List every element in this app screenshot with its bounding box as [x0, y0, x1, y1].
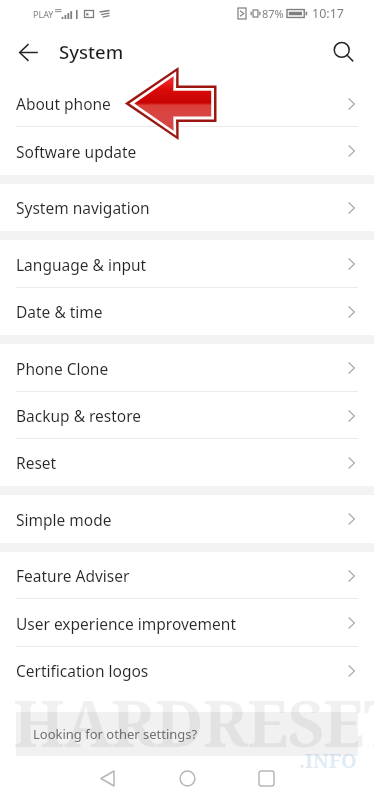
staticText: Phone Clone: [16, 358, 109, 379]
staticText: Feature Adviser: [16, 565, 130, 586]
button[interactable]: Certification logos: [0, 647, 374, 694]
staticText: HARDRESET: [13, 679, 374, 765]
staticText: 10:17: [312, 5, 344, 22]
button[interactable]: Back: [85, 756, 129, 800]
staticText: Backup & restore: [16, 405, 142, 426]
button[interactable]: Recents: [244, 756, 288, 800]
button[interactable]: System navigation: [0, 184, 374, 231]
button[interactable]: Home: [165, 756, 209, 800]
staticText: .INFO: [299, 747, 357, 774]
button[interactable]: Backup & restore: [0, 392, 374, 439]
button[interactable]: Reset: [0, 439, 374, 486]
staticText: PLAY: [33, 8, 54, 20]
button[interactable]: User experience improvement: [0, 599, 374, 647]
staticText: User experience improvement: [16, 613, 236, 634]
staticText: System navigation: [16, 197, 150, 218]
staticText: 87%: [262, 6, 284, 21]
staticText: System: [59, 39, 124, 64]
button[interactable]: Date & time: [0, 288, 374, 335]
button[interactable]: Phone Clone: [0, 344, 374, 392]
staticText: Language & input: [16, 254, 147, 275]
staticText: Date & time: [16, 301, 103, 322]
button[interactable]: Feature Adviser: [0, 552, 374, 599]
button[interactable]: Search: [324, 33, 362, 71]
staticText: Simple mode: [16, 509, 112, 530]
button[interactable]: Looking for other settings?: [16, 712, 358, 756]
button[interactable]: Software update: [0, 127, 374, 175]
staticText: Software update: [16, 141, 137, 162]
button[interactable]: Simple mode: [0, 495, 374, 543]
button[interactable]: Back: [9, 33, 47, 71]
staticText: Looking for other settings?: [33, 725, 198, 743]
button[interactable]: About phone: [0, 80, 374, 127]
staticText: Reset: [16, 452, 57, 473]
staticText: Certification logos: [16, 660, 149, 681]
button[interactable]: Language & input: [0, 240, 374, 288]
staticText: About phone: [16, 93, 111, 114]
